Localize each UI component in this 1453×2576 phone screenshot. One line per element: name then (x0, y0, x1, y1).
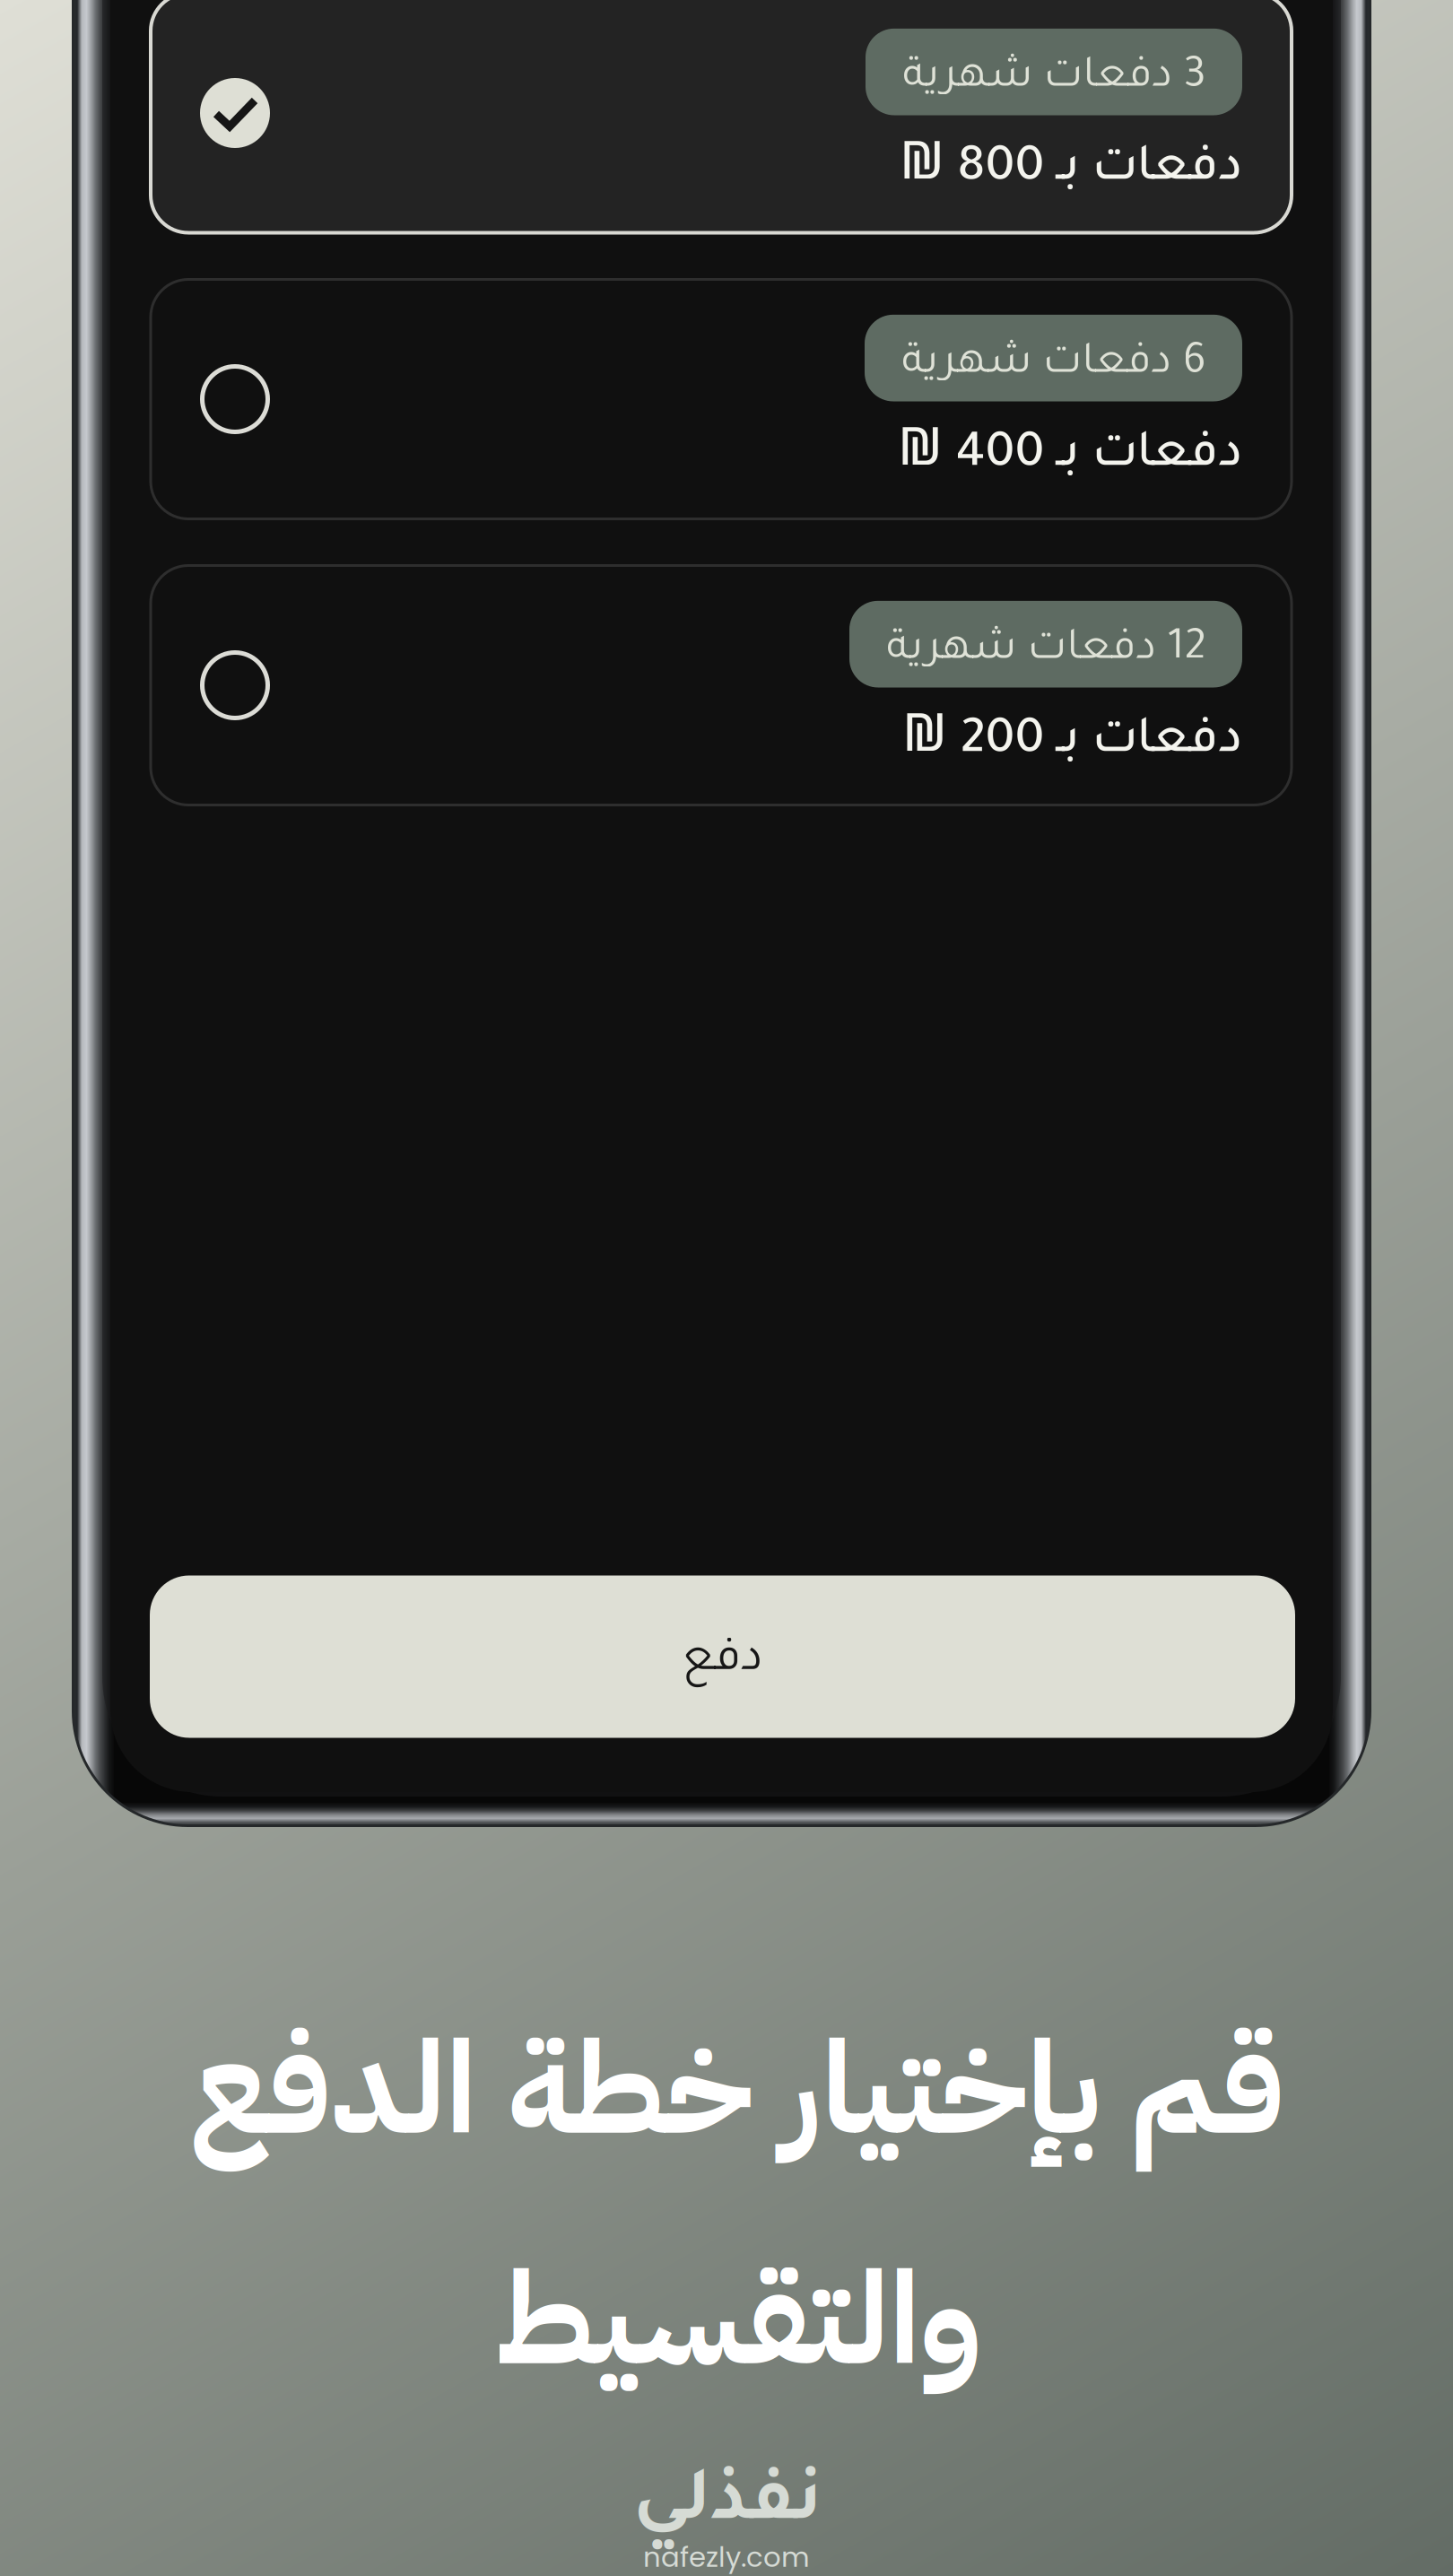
staticText: دفعات بـ 800 ₪ (900, 122, 1242, 198)
button[interactable]: 12 دفعات شهرية (151, 566, 1292, 805)
staticText: دفعات بـ 400 ₪ (898, 409, 1242, 484)
staticText: نفذلي (633, 2469, 822, 2545)
button[interactable]: 3 دفعات شهرية (151, 0, 1292, 233)
staticText: 6 دفعات شهرية (901, 342, 1205, 388)
staticText: والتقسيط (495, 2224, 981, 2416)
staticText: 3 دفعات شهرية (902, 56, 1205, 102)
staticText: nafezly.com (643, 2538, 810, 2576)
button[interactable]: 6 دفعات شهرية (151, 279, 1292, 519)
staticText: دفع (682, 1638, 763, 1687)
button[interactable]: دفع (150, 1575, 1295, 1738)
staticText: 12 دفعات شهرية (886, 629, 1205, 674)
staticText: قم بإختيار خطة الدفع (189, 1994, 1284, 2186)
staticText: دفعات بـ 200 ₪ (902, 695, 1242, 770)
